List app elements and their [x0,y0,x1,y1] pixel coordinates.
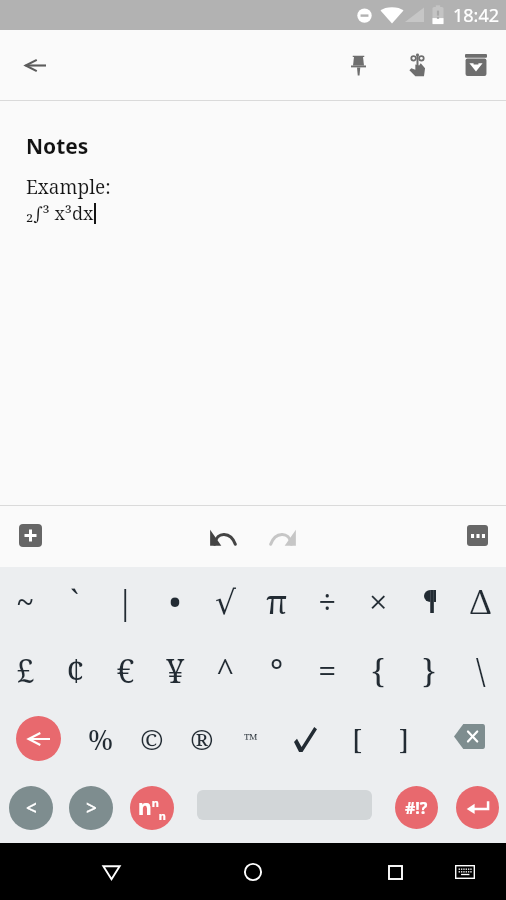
staticText: ] [399,720,410,758]
button[interactable]: π [251,567,302,636]
button[interactable]: ® [180,717,224,761]
button[interactable]: } [404,636,455,705]
button[interactable]: { [353,636,404,705]
button[interactable]: ` [50,567,100,636]
staticText: Notes [26,132,89,161]
button[interactable]: Redo [261,515,305,559]
button[interactable]: ™ [229,717,273,761]
button[interactable]: © [130,717,174,761]
button[interactable]: ~ [0,567,50,636]
staticText: ÷ [318,579,337,624]
staticText: = [318,648,337,693]
button[interactable]: Add [8,515,52,559]
button[interactable]: Previous [9,786,53,830]
button[interactable]: Next [69,786,113,830]
staticText: € [116,648,135,693]
staticText: ¢ [66,648,85,693]
button[interactable] [404,567,455,636]
staticText: ™ [244,728,259,751]
button[interactable]: × [353,567,404,636]
staticText: © [140,720,164,758]
button[interactable]: | [100,567,150,636]
staticText: ¥ [166,648,185,693]
button[interactable]: £ [0,636,50,705]
button[interactable]: % [79,717,123,761]
staticText: ~ [16,579,35,624]
button[interactable]: Gestures [394,42,440,88]
staticText: > [86,795,97,821]
staticText: } [422,648,437,693]
button[interactable]: Recent apps [372,849,418,895]
staticText: Example: [26,174,111,200]
button[interactable]: = [302,636,353,705]
button[interactable]: • [150,567,200,636]
button[interactable]: \ [455,636,506,705]
button[interactable]: ^ [200,636,251,705]
staticText: π [266,579,288,624]
button[interactable]: Home [230,849,276,895]
button[interactable]: Back [88,849,134,895]
staticText: #!? [405,797,428,819]
staticText: ^ [216,648,235,693]
button[interactable]: Archive [453,42,499,88]
button[interactable]: Previous layout [16,716,61,761]
button[interactable]: Δ [455,567,506,636]
button[interactable]: More options [455,515,499,559]
staticText: < [26,795,37,821]
staticText: 18:42 [453,3,500,28]
button[interactable]: Undo [201,515,245,559]
staticText: \ [476,648,486,693]
staticText: { [371,648,386,693]
button[interactable]: [ [335,717,379,761]
staticText: ` [70,579,80,624]
staticText: £ [16,648,35,693]
staticText: ® [190,720,214,758]
button[interactable]: √ [200,567,251,636]
staticText: [ [352,720,363,758]
staticText: nnn [138,793,166,823]
staticText: % [88,720,114,758]
button[interactable]: Enter [456,786,499,829]
button[interactable] [283,717,327,761]
button[interactable]: ¥ [150,636,200,705]
button[interactable]: Switch keyboard [445,852,485,892]
button[interactable]: Symbols [395,786,438,829]
button[interactable]: Back [10,40,60,90]
staticText: Δ [470,579,491,624]
staticText: ₂∫³ x³dx [26,201,94,226]
button[interactable]: ° [251,636,302,705]
staticText: ° [270,648,284,693]
staticText: | [116,579,135,624]
button[interactable]: € [100,636,150,705]
button[interactable]: ¢ [50,636,100,705]
staticText: √ [215,583,237,621]
staticText: × [369,579,388,624]
button[interactable]: ] [382,717,426,761]
button[interactable]: Superscript and subscript [130,786,174,830]
button[interactable]: Backspace [447,717,491,761]
button[interactable]: Pin [335,42,381,88]
button[interactable]: ÷ [302,567,353,636]
staticText: • [169,579,181,624]
